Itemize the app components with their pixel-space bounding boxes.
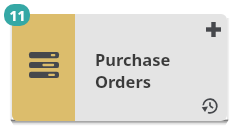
button[interactable]: Add [201,17,225,41]
staticText: Purchase [95,48,171,70]
button[interactable]: Purchase [12,14,227,121]
button[interactable]: 11 [4,4,30,26]
staticText: Orders [95,70,152,92]
button[interactable]: History [198,94,222,118]
staticText: 11 [9,6,26,25]
